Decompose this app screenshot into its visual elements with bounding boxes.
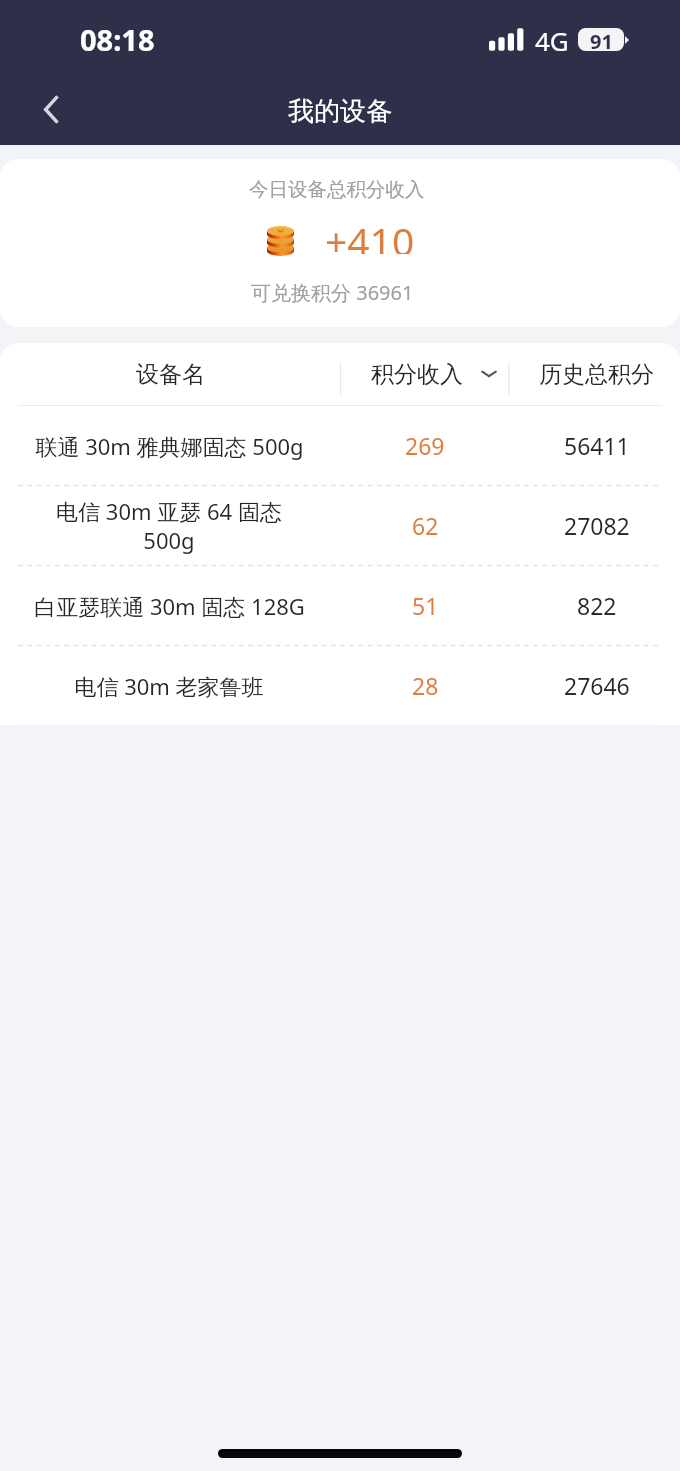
staticText: 62 — [412, 510, 439, 541]
other: Cellular signal strength — [489, 28, 527, 52]
button[interactable]: 历史总积分 — [536, 343, 656, 405]
staticText: +410 — [325, 214, 415, 254]
button[interactable]: 今日设备总积分收入 — [0, 159, 680, 327]
staticText: 56411 — [564, 430, 630, 461]
other: Coins — [267, 226, 294, 256]
button[interactable]: 电信 30m 老家鲁班 — [0, 646, 680, 725]
button[interactable]: 积分收入 — [371, 343, 497, 405]
staticText: 联通 30m 雅典娜固态 500g — [35, 431, 304, 461]
staticText: 4G — [535, 23, 569, 58]
staticText: 积分收入 — [371, 360, 463, 389]
button[interactable]: 设备名 — [110, 343, 230, 405]
staticText: 27082 — [564, 510, 630, 541]
staticText: 269 — [405, 430, 445, 461]
staticText: 822 — [577, 590, 617, 621]
staticText: 电信 30m 亚瑟 64 固态 500g — [33, 496, 305, 555]
staticText: 白亚瑟联通 30m 固态 128G — [34, 591, 305, 621]
staticText: 27646 — [564, 670, 630, 701]
staticText: 电信 30m 老家鲁班 — [74, 671, 264, 701]
staticText: 28 — [412, 670, 439, 701]
button[interactable]: Back — [25, 83, 77, 135]
staticText: 91 — [590, 28, 613, 51]
staticText: 我的设备 — [288, 95, 392, 128]
staticText: 今日设备总积分收入 — [249, 177, 425, 202]
staticText: 设备名 — [136, 360, 205, 389]
staticText: 历史总积分 — [539, 360, 654, 389]
staticText: 08:18 — [80, 20, 155, 59]
staticText: 51 — [412, 590, 439, 621]
button[interactable]: 联通 30m 雅典娜固态 500g — [0, 406, 680, 485]
button[interactable]: 白亚瑟联通 30m 固态 128G — [0, 566, 680, 645]
button[interactable]: 电信 30m 亚瑟 64 固态 500g — [0, 486, 680, 565]
staticText: 可兑换积分 36961 — [251, 279, 414, 306]
